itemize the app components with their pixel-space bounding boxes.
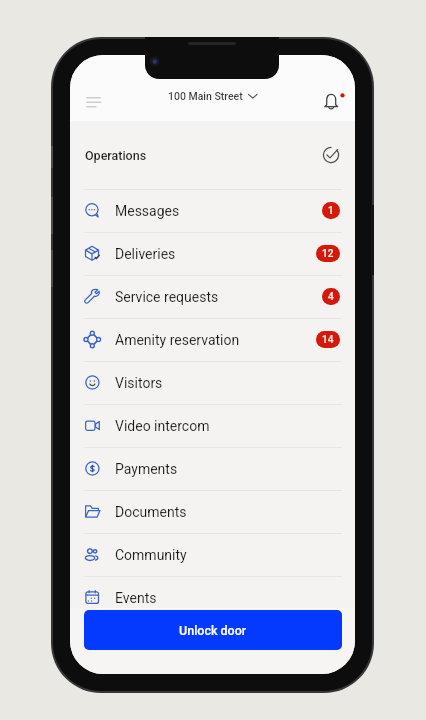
button[interactable]: Menu <box>72 85 100 113</box>
staticText: 12 <box>322 248 334 260</box>
staticText: Messages <box>115 203 180 219</box>
staticText: Service requests <box>115 289 219 305</box>
staticText: Documents <box>115 504 187 520</box>
button[interactable]: Deliveries <box>70 232 355 275</box>
button[interactable]: Community <box>70 533 355 576</box>
staticText: Operations <box>85 148 147 163</box>
staticText: Amenity reservation <box>115 332 240 348</box>
button[interactable]: Events <box>70 576 355 619</box>
staticText: 100 Main Street <box>168 90 243 102</box>
button[interactable]: Service requests <box>70 275 355 318</box>
button[interactable]: Video intercom <box>70 404 355 447</box>
staticText: Visitors <box>115 375 163 391</box>
staticText: Deliveries <box>115 246 176 262</box>
staticText: 4 <box>328 291 334 303</box>
button[interactable]: Documents <box>70 490 355 533</box>
staticText: Video intercom <box>115 418 210 434</box>
button[interactable]: Unlock door <box>84 610 342 650</box>
staticText: Unlock door <box>179 623 247 638</box>
staticText: 14 <box>322 334 334 346</box>
button[interactable]: Messages <box>70 189 355 232</box>
button[interactable]: Payments <box>70 447 355 490</box>
staticText: Events <box>115 590 157 606</box>
button[interactable]: Mark all complete <box>321 145 341 165</box>
staticText: 1 <box>328 205 334 217</box>
button[interactable]: Amenity reservation <box>70 318 355 361</box>
button[interactable]: Visitors <box>70 361 355 404</box>
staticText: Payments <box>115 461 178 477</box>
button[interactable]: Notifications <box>321 88 345 112</box>
staticText: Community <box>115 547 187 563</box>
